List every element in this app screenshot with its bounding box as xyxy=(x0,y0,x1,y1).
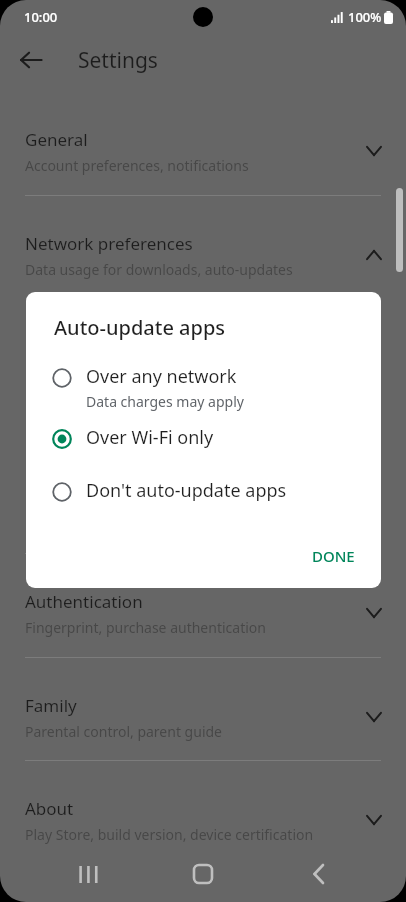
staticText: Fingerprint, purchase authentication xyxy=(25,618,266,637)
staticText: Account preferences, notifications xyxy=(25,156,249,175)
staticText: About xyxy=(25,797,74,820)
staticText: Parental control, parent guide xyxy=(25,722,222,741)
staticText: General xyxy=(25,128,88,151)
staticText: Over any network xyxy=(86,364,237,389)
staticText: Don't auto-update apps xyxy=(86,478,287,503)
staticText: Settings xyxy=(78,46,158,75)
button[interactable]: Home xyxy=(176,847,230,901)
staticText: Over Wi-Fi only xyxy=(86,425,214,450)
button[interactable]: About xyxy=(0,790,406,850)
button[interactable]: Authentication xyxy=(0,583,406,643)
button[interactable]: Don't auto-update apps xyxy=(26,474,381,507)
staticText: Data charges may apply xyxy=(86,392,244,411)
staticText: Authentication xyxy=(25,590,143,613)
button[interactable]: General xyxy=(0,121,406,181)
staticText: Auto-update apps xyxy=(54,314,226,341)
staticText: DONE xyxy=(312,546,355,566)
button[interactable]: Back xyxy=(291,847,345,901)
staticText: Data usage for downloads, auto-updates xyxy=(25,260,293,279)
button[interactable]: Network preferences xyxy=(0,225,406,285)
staticText: 10:00 xyxy=(24,8,58,26)
button[interactable]: DONE xyxy=(300,538,367,574)
button[interactable]: Back xyxy=(8,37,54,83)
button[interactable]: Recent apps xyxy=(61,847,115,901)
button[interactable]: Family xyxy=(0,687,406,747)
staticText: Play Store, build version, device certif… xyxy=(25,825,314,844)
staticText: Network preferences xyxy=(25,232,193,255)
button[interactable]: Over any network xyxy=(26,360,381,415)
button[interactable]: Over Wi-Fi only xyxy=(26,421,381,454)
staticText: 100% xyxy=(348,8,382,26)
staticText: Family xyxy=(25,694,77,717)
